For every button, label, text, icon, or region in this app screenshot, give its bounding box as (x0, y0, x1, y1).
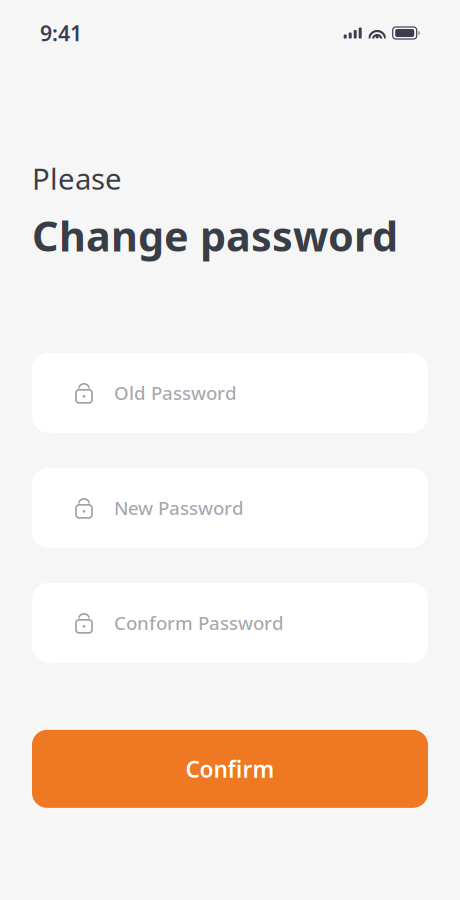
staticText: Conform Password (114, 610, 284, 635)
button[interactable]: Confirm (32, 730, 428, 808)
staticText: Change password (32, 208, 398, 263)
staticText: Please (32, 159, 122, 198)
staticText: New Password (114, 495, 244, 520)
staticText: Old Password (114, 380, 237, 405)
button[interactable]: New Password (32, 468, 428, 548)
button[interactable]: Old Password (32, 353, 428, 433)
staticText: Confirm (185, 754, 274, 784)
staticText: 9:41 (40, 19, 82, 47)
button[interactable]: Conform Password (32, 583, 428, 663)
